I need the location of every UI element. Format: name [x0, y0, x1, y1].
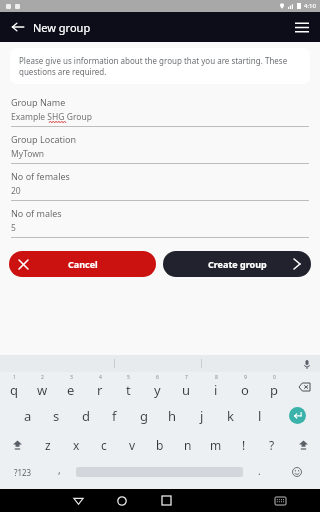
button[interactable]: 2 — [28, 372, 56, 401]
button[interactable]: Recents — [144, 489, 188, 512]
button[interactable]: s — [42, 401, 71, 430]
staticText: 2 — [41, 374, 44, 381]
button[interactable]: n — [174, 430, 202, 459]
staticText: Create group — [208, 258, 267, 270]
button[interactable]: Cancel — [9, 251, 156, 277]
staticText: 1 — [13, 374, 16, 381]
button[interactable]: Period — [245, 459, 274, 485]
button[interactable]: l — [245, 401, 274, 430]
staticText: 9 — [244, 374, 247, 381]
staticText: v — [129, 437, 136, 453]
staticText: j — [200, 407, 204, 425]
staticText: 6 — [156, 374, 159, 381]
staticText: 8 — [215, 374, 218, 381]
staticText: s — [53, 407, 60, 425]
button[interactable]: ?123 — [0, 459, 45, 485]
button[interactable]: Emoji — [274, 459, 320, 485]
button[interactable]: h — [158, 401, 187, 430]
button[interactable]: Back — [56, 489, 100, 512]
button[interactable]: a — [13, 401, 42, 430]
staticText: b — [156, 437, 164, 453]
staticText: No of females — [11, 170, 70, 182]
staticText: n — [184, 437, 192, 453]
button[interactable]: Keyboard — [258, 489, 302, 512]
staticText: x — [73, 437, 80, 453]
staticText: 3 — [70, 374, 73, 381]
button[interactable]: 8 — [201, 372, 230, 401]
button[interactable]: g — [129, 401, 158, 430]
button[interactable]: Voice input — [300, 357, 314, 371]
staticText: l — [258, 407, 262, 425]
button[interactable]: 4 — [85, 372, 114, 401]
staticText: y — [154, 381, 161, 399]
staticText: 7 — [185, 374, 188, 381]
button[interactable]: 0 — [259, 372, 288, 401]
staticText: c — [101, 437, 107, 453]
staticText: 4:10 — [304, 2, 316, 10]
button[interactable]: ! — [230, 430, 258, 459]
button[interactable]: 6 — [143, 372, 172, 401]
staticText: h — [168, 407, 177, 425]
staticText: 5 — [11, 222, 16, 234]
button[interactable]: 9 — [230, 372, 259, 401]
staticText: w — [37, 381, 48, 399]
staticText: 0 — [273, 374, 276, 381]
button[interactable]: Shift — [286, 430, 320, 459]
staticText: Group Name — [11, 96, 66, 108]
staticText: ?123 — [14, 467, 32, 478]
button[interactable]: j — [187, 401, 216, 430]
button[interactable]: No of males — [0, 201, 320, 238]
staticText: e — [67, 381, 75, 399]
button[interactable]: x — [62, 430, 90, 459]
staticText: ? — [269, 437, 275, 453]
button[interactable]: v — [118, 430, 146, 459]
staticText: No of males — [11, 207, 62, 219]
button[interactable]: ? — [258, 430, 286, 459]
staticText: 20 — [11, 185, 21, 197]
staticText: Example SHG Group — [11, 111, 92, 123]
staticText: Group Location — [11, 133, 77, 145]
staticText: i — [214, 381, 218, 399]
button[interactable]: Back — [6, 15, 30, 39]
staticText: , — [58, 463, 61, 477]
staticText: p — [270, 381, 278, 399]
button[interactable]: Shift — [0, 430, 34, 459]
button[interactable]: Enter — [274, 401, 320, 430]
button[interactable]: Backspace — [288, 372, 320, 401]
button[interactable]: z — [34, 430, 62, 459]
button[interactable]: Create group — [163, 251, 311, 277]
button[interactable]: Menu — [290, 15, 314, 39]
staticText: MyTown — [11, 148, 45, 160]
staticText: z — [45, 437, 51, 453]
button[interactable]: Group Location — [0, 127, 320, 164]
button[interactable]: k — [216, 401, 245, 430]
button[interactable]: No of females — [0, 164, 320, 201]
button[interactable]: d — [71, 401, 100, 430]
staticText: o — [241, 381, 249, 399]
staticText: k — [227, 407, 234, 425]
staticText: 5 — [127, 374, 130, 381]
staticText: m — [210, 437, 222, 453]
button[interactable]: 3 — [56, 372, 85, 401]
staticText: r — [97, 381, 103, 399]
button[interactable]: c — [90, 430, 118, 459]
button[interactable]: Home — [100, 489, 144, 512]
button[interactable]: m — [202, 430, 230, 459]
button[interactable]: Comma — [45, 459, 74, 485]
button[interactable]: f — [100, 401, 129, 430]
button[interactable]: b — [146, 430, 174, 459]
staticText: Please give us information about the gro… — [19, 55, 301, 77]
button[interactable]: 7 — [172, 372, 201, 401]
staticText: q — [10, 381, 18, 399]
staticText: Cancel — [68, 258, 98, 270]
staticText: New group — [33, 20, 91, 35]
staticText: u — [182, 381, 191, 399]
staticText: a — [24, 407, 32, 425]
staticText: f — [112, 407, 117, 425]
staticText: t — [126, 381, 131, 399]
button[interactable]: 5 — [114, 372, 143, 401]
button[interactable]: 1 — [0, 372, 28, 401]
button[interactable]: Group Name — [0, 90, 320, 127]
staticText: 4 — [99, 374, 102, 381]
